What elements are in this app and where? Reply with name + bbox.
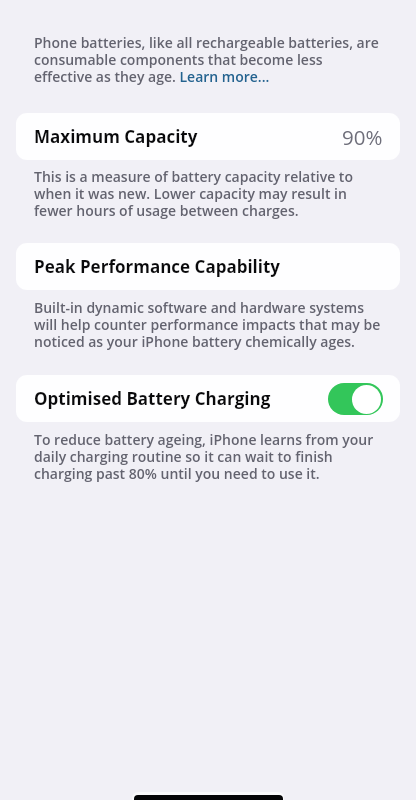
staticText: Maximum Capacity [34,125,198,148]
button[interactable]: Maximum Capacity [16,113,400,160]
button[interactable]: Peak Performance Capability [16,243,400,290]
staticText: This is a measure of battery capacity re… [34,169,382,220]
button[interactable]: Optimised Battery Charging [16,375,400,422]
staticText: Optimised Battery Charging [34,387,271,410]
other: Optimised Battery Charging, on [328,383,383,415]
staticText: 90% [342,123,383,151]
staticText: To reduce battery ageing, iPhone learns … [34,432,382,483]
staticText: Built-in dynamic software and hardware s… [34,300,382,351]
staticText: Phone batteries, like all rechargeable b… [34,35,382,86]
staticText: Peak Performance Capability [34,255,281,278]
